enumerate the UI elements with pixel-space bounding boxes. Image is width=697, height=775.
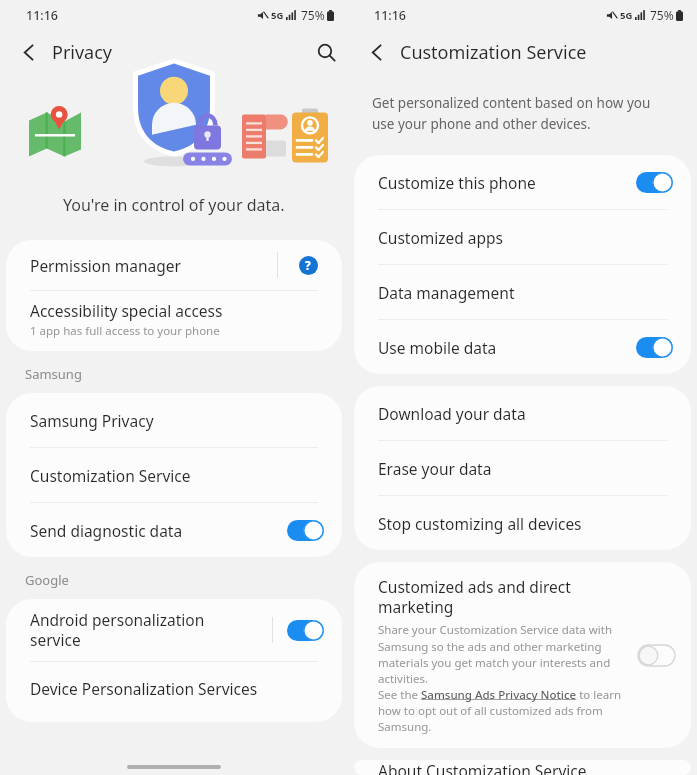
staticText: Samsung Privacy: [30, 410, 154, 431]
staticText: You're in control of your data.: [63, 194, 285, 216]
staticText: Accessibility special access: [30, 300, 223, 321]
staticText: Customized apps: [378, 227, 504, 248]
button[interactable]: Customize this phone: [354, 155, 691, 209]
staticText: Permission manager: [30, 255, 181, 276]
button[interactable]: Device Personalization Services: [6, 662, 342, 714]
staticText: Samsung: [25, 365, 82, 383]
staticText: 11:16: [26, 7, 59, 24]
staticText: Download your data: [378, 403, 526, 424]
staticText: 75%: [301, 7, 325, 23]
staticText: Privacy: [52, 40, 113, 65]
button[interactable]: Permission manager: [6, 240, 342, 290]
staticText: About Customization Service: [378, 760, 587, 775]
staticText: Send diagnostic data: [30, 520, 183, 541]
button[interactable]: Help: [292, 249, 324, 281]
button[interactable]: Download your data: [354, 386, 691, 440]
button[interactable]: Erase your data: [354, 441, 691, 495]
staticText: 5G: [271, 9, 284, 22]
button[interactable]: Search: [304, 30, 348, 74]
button[interactable]: Data management: [354, 265, 691, 319]
staticText: ?: [305, 257, 311, 273]
staticText: 75%: [650, 7, 674, 23]
staticText: Customized ads and direct marketing: [378, 576, 571, 618]
button[interactable]: Toggle on: [636, 172, 673, 193]
button[interactable]: Samsung Privacy: [6, 393, 342, 447]
button[interactable]: Customized apps: [354, 210, 691, 264]
staticText: Get personalized content based on how yo…: [372, 94, 651, 133]
staticText: Use mobile data: [378, 337, 497, 358]
button[interactable]: Toggle on: [287, 520, 324, 541]
button[interactable]: Customization Service: [6, 448, 342, 502]
button[interactable]: About Customization Service: [354, 760, 691, 775]
staticText: Erase your data: [378, 458, 492, 479]
staticText: 5G: [620, 9, 633, 22]
button[interactable]: Navigate up: [10, 33, 48, 71]
staticText: Device Personalization Services: [30, 678, 258, 699]
staticText: 1 app has full access to your phone: [30, 323, 220, 339]
staticText: Stop customizing all devices: [378, 513, 582, 534]
staticText: Share your Customization Service data wi…: [378, 622, 628, 734]
staticText: Data management: [378, 282, 515, 303]
staticText: Customization Service: [30, 465, 191, 486]
staticText: Customization Service: [400, 40, 587, 65]
button[interactable]: Navigate up: [358, 33, 396, 71]
button[interactable]: Toggle off: [638, 645, 675, 666]
button[interactable]: Toggle on: [287, 620, 324, 641]
button[interactable]: Customized ads and direct marketing: [354, 562, 691, 748]
staticText: Android personalization service: [30, 609, 205, 651]
button[interactable]: Stop customizing all devices: [354, 496, 691, 550]
button[interactable]: Android personalization service: [6, 599, 342, 661]
button[interactable]: Use mobile data: [354, 320, 691, 374]
button[interactable]: Send diagnostic data: [6, 503, 342, 557]
staticText: 11:16: [374, 7, 407, 24]
staticText: Customize this phone: [378, 172, 536, 193]
button[interactable]: Accessibility special access: [6, 291, 342, 347]
button[interactable]: Toggle on: [636, 337, 673, 358]
staticText: Google: [25, 571, 69, 589]
